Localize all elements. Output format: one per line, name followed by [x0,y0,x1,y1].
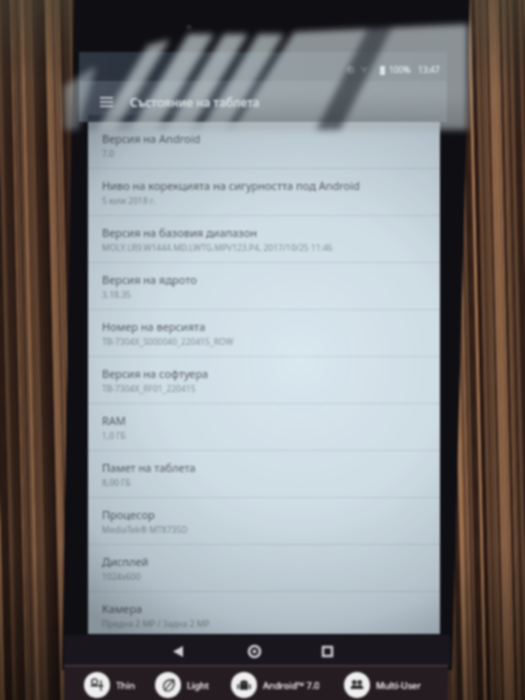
staticText: 1024x600 [102,571,141,583]
button[interactable]: Версия на базовия диапазон [88,215,440,262]
button[interactable]: Камера [88,591,440,634]
button[interactable]: Open navigation menu [95,91,117,113]
button[interactable]: RAM [88,403,440,450]
button[interactable]: Light [155,672,209,699]
staticText: Версия на Android [102,131,201,146]
staticText: Камера [102,601,143,616]
button[interactable]: Процесор [88,497,440,544]
button[interactable]: Версия на ядрото [88,262,440,309]
staticText: 7.0 [102,148,115,160]
button[interactable]: Версия на софтуера [88,356,440,403]
staticText: Състояние на таблета [130,94,260,110]
staticText: 1,0 ГБ [102,430,126,442]
staticText: TB-7304X_RF01_220415 [102,383,196,395]
staticText: Ниво на корекцията на сигурността под An… [102,178,360,193]
staticText: Light [187,679,209,691]
button[interactable]: Версия на Android [88,122,440,168]
staticText: Версия на софтуера [102,366,209,381]
staticText: MOLY.LR9.W1444.MD.LWTG.MPV123.P4, 2017/1… [102,242,333,254]
staticText: 3.18.35 [102,289,131,301]
staticText: Версия на ядрото [102,272,197,287]
staticText: MediaTek® MT8735D [102,524,188,536]
button[interactable]: Recent apps [314,638,340,664]
button[interactable]: Памет на таблета [88,450,440,497]
staticText: Multi-User [376,679,422,691]
button[interactable]: Номер на версията [88,309,440,356]
button[interactable]: Thin [84,672,135,699]
button[interactable]: Ниво на корекцията на сигурността под An… [88,168,440,215]
staticText: Номер на версията [102,319,206,334]
staticText: TB-7304X_S000040_220415_ROW [102,336,234,348]
button[interactable]: Дисплей [88,544,440,591]
button[interactable]: Back [165,638,191,664]
staticText: Предна 2 MP / Задна 2 MP [102,618,210,630]
staticText: Памет на таблета [102,460,196,475]
staticText: Процесор [102,507,155,522]
staticText: Android™ 7.0 [263,679,320,691]
staticText: Версия на базовия диапазон [102,225,257,240]
button[interactable]: Home [241,638,267,664]
staticText: Thin [116,679,135,691]
staticText: 100% [389,64,411,76]
staticText: Дисплей [102,554,149,569]
staticText: 5 юли 2018 г. [102,195,156,207]
staticText: RAM [102,413,126,428]
staticText: 13:47 [418,64,440,76]
staticText: 8,00 ГБ [102,477,131,489]
button[interactable]: Multi-User [344,672,422,699]
button[interactable]: Android™ 7.0 [231,672,320,699]
